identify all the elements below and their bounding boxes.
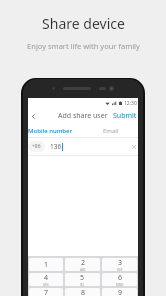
staticText: 8 [81, 288, 86, 296]
staticText: Enjoy smart life with your family [27, 41, 140, 51]
staticText: MNO [116, 283, 124, 286]
button[interactable]: 8 [65, 288, 100, 296]
button[interactable]: 2 [65, 258, 100, 271]
button[interactable]: Submit [112, 108, 138, 124]
staticText: 6 [118, 273, 123, 283]
button[interactable]: Back [28, 111, 39, 122]
button[interactable]: +86 [28, 141, 45, 152]
staticText: 12:30 [124, 100, 137, 107]
staticText: +86 [32, 143, 41, 150]
button[interactable]: 9 [102, 288, 137, 296]
staticText: 7 [44, 288, 49, 296]
button[interactable]: 6 [102, 273, 137, 286]
staticText: Submit [113, 111, 137, 121]
staticText: DEF [117, 268, 123, 271]
button[interactable]: 7 [29, 288, 63, 296]
button[interactable]: Clear [129, 142, 138, 151]
button[interactable]: 1 [29, 258, 63, 271]
button[interactable]: Mobile number [28, 124, 83, 137]
staticText: Add share user [58, 111, 108, 121]
staticText: 136 [50, 142, 62, 151]
staticText: JKL [80, 283, 85, 286]
staticText: ABC [80, 268, 86, 271]
button[interactable]: 3 [102, 258, 137, 271]
staticText: GHI [43, 283, 49, 286]
button[interactable]: 5 [65, 273, 100, 286]
staticText: Share device [42, 14, 125, 33]
staticText: 4 [44, 273, 49, 283]
staticText: 9 [118, 288, 123, 296]
staticText: Mobile number [28, 127, 73, 135]
staticText: 2 [81, 258, 86, 268]
button[interactable]: Email [83, 124, 138, 137]
staticText: Email [103, 127, 119, 135]
staticText: 5 [80, 273, 85, 283]
staticText: 3 [118, 258, 123, 268]
staticText: 1 [44, 260, 49, 270]
button[interactable]: 4 [29, 273, 63, 286]
